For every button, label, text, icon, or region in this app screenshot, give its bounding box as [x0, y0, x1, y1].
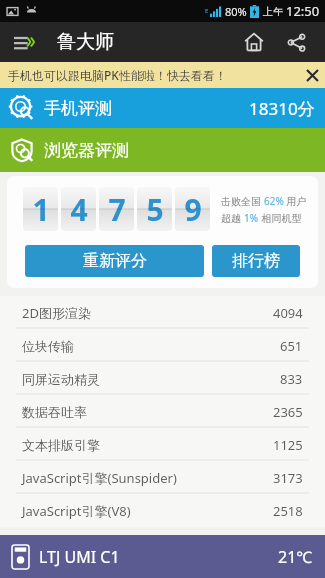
- staticText: 833: [280, 370, 303, 388]
- staticText: 数据吞吐率: [22, 404, 87, 420]
- button[interactable]: 重新评分: [25, 245, 204, 277]
- staticText: 超越: [221, 211, 244, 225]
- staticText: 80%: [225, 4, 247, 19]
- staticText: 上午: [263, 5, 283, 18]
- staticText: JavaScript引擎(Sunspider): [22, 469, 177, 487]
- staticText: 手机评测: [44, 98, 112, 119]
- staticText: 21℃: [278, 546, 313, 568]
- staticText: LTJ UMI C1: [39, 546, 120, 568]
- button[interactable]: 浏览器评测: [0, 128, 325, 172]
- staticText: 同屏运动精灵: [22, 371, 100, 387]
- button[interactable]: 2D图形渲染: [0, 296, 325, 329]
- staticText: 9: [184, 189, 202, 230]
- button[interactable]: Close: [299, 62, 325, 88]
- button[interactable]: LTJ UMI C1: [0, 535, 325, 578]
- staticText: JavaScript引擎(V8): [22, 502, 131, 520]
- staticText: 位块传输: [22, 338, 74, 354]
- staticText: 4094: [273, 304, 303, 322]
- button[interactable]: 排行榜: [212, 245, 300, 277]
- button[interactable]: 数据吞吐率: [0, 395, 325, 428]
- button[interactable]: JavaScript引擎(V8): [0, 494, 325, 527]
- staticText: 4: [70, 189, 88, 230]
- staticText: 5: [146, 189, 164, 230]
- staticText: 18310分: [249, 97, 315, 120]
- staticText: 651: [280, 337, 303, 355]
- staticText: 相同机型: [259, 211, 302, 225]
- staticText: 12:50: [286, 2, 320, 20]
- button[interactable]: 同屏运动精灵: [0, 362, 325, 395]
- staticText: 手机也可以跟电脑PK性能啦！快去看看！: [8, 67, 227, 83]
- staticText: 文本排版引擎: [22, 437, 100, 453]
- button[interactable]: JavaScript引擎(Sunspider): [0, 461, 325, 494]
- button[interactable]: Home: [237, 25, 271, 59]
- staticText: 2365: [273, 403, 303, 421]
- staticText: 2D图形渲染: [22, 304, 91, 322]
- button[interactable]: Menu: [10, 30, 40, 54]
- staticText: 鲁大师: [57, 30, 114, 54]
- staticText: 1125: [273, 436, 303, 454]
- staticText: 1: [32, 189, 50, 230]
- staticText: 浏览器评测: [44, 140, 129, 161]
- button[interactable]: 文本排版引擎: [0, 428, 325, 461]
- button[interactable]: 手机评测: [0, 88, 325, 128]
- staticText: E: [205, 7, 209, 15]
- staticText: 重新评分: [83, 251, 147, 271]
- button[interactable]: 位块传输: [0, 329, 325, 362]
- staticText: 1%: [244, 211, 259, 225]
- staticText: 62%: [264, 194, 284, 208]
- staticText: 击败全国: [221, 194, 264, 208]
- staticText: 7: [108, 189, 126, 230]
- staticText: 用户: [284, 194, 307, 208]
- button[interactable]: Share: [279, 25, 313, 59]
- staticText: 3173: [273, 469, 303, 487]
- staticText: 排行榜: [232, 251, 280, 271]
- staticText: 2518: [273, 502, 303, 520]
